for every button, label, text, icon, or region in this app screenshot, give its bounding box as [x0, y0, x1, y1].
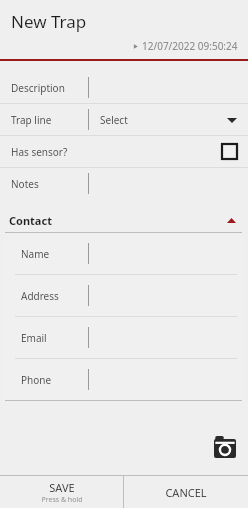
staticText: SAVE: [49, 480, 75, 495]
button[interactable]: Phone: [5, 359, 242, 400]
button[interactable]: Take photo: [214, 436, 236, 458]
button[interactable]: SAVE: [0, 476, 123, 508]
button[interactable]: Notes: [0, 168, 248, 199]
staticText: Email: [21, 331, 47, 345]
button[interactable]: Contact: [0, 209, 248, 232]
button[interactable]: CANCEL: [124, 476, 248, 508]
button[interactable]: Trap line: [0, 104, 248, 135]
staticText: Trap line: [11, 113, 52, 127]
staticText: Press & hold: [41, 495, 83, 505]
staticText: Has sensor?: [11, 145, 68, 159]
button[interactable]: Address: [5, 275, 242, 316]
button[interactable]: Name: [5, 233, 242, 274]
staticText: 12/07/2022 09:50:24: [142, 39, 238, 53]
button[interactable]: Description: [0, 72, 248, 103]
button[interactable]: Email: [5, 317, 242, 358]
staticText: Address: [21, 289, 59, 303]
staticText: Select: [100, 113, 128, 127]
staticText: Contact: [9, 213, 52, 228]
staticText: Phone: [21, 373, 52, 387]
staticText: CANCEL: [165, 485, 207, 500]
staticText: Notes: [11, 177, 39, 191]
staticText: New Trap: [11, 10, 87, 33]
button[interactable]: Has sensor?: [0, 136, 248, 167]
staticText: Description: [11, 81, 65, 95]
staticText: Name: [21, 247, 50, 261]
